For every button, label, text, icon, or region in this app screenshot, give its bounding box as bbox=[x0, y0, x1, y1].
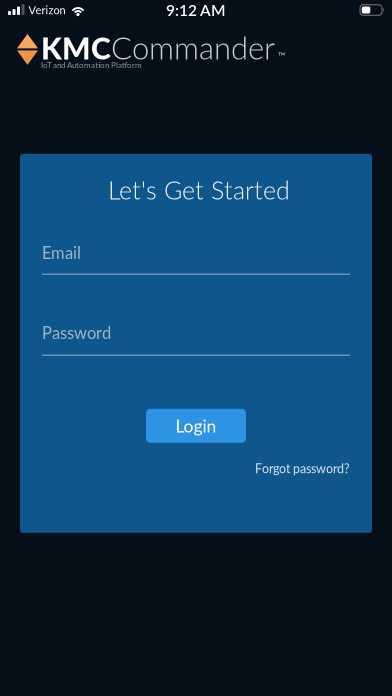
button[interactable]: Email bbox=[42, 243, 350, 275]
button[interactable]: Login bbox=[146, 409, 246, 443]
staticText: Login bbox=[175, 415, 216, 436]
staticText: Let's Get Started bbox=[108, 175, 290, 205]
staticText: Commander bbox=[111, 29, 275, 66]
staticText: Verizon bbox=[28, 3, 65, 17]
button[interactable]: Forgot password? bbox=[255, 461, 350, 476]
staticText: IoT and Automation Platform bbox=[41, 60, 142, 70]
button[interactable]: Password bbox=[42, 323, 350, 356]
staticText: ™ bbox=[275, 50, 286, 62]
staticText: Forgot password? bbox=[255, 461, 350, 476]
staticText: Password bbox=[42, 323, 111, 343]
staticText: Email bbox=[42, 243, 81, 263]
staticText: KMC bbox=[41, 30, 111, 66]
staticText: 9:12 AM bbox=[166, 1, 226, 19]
